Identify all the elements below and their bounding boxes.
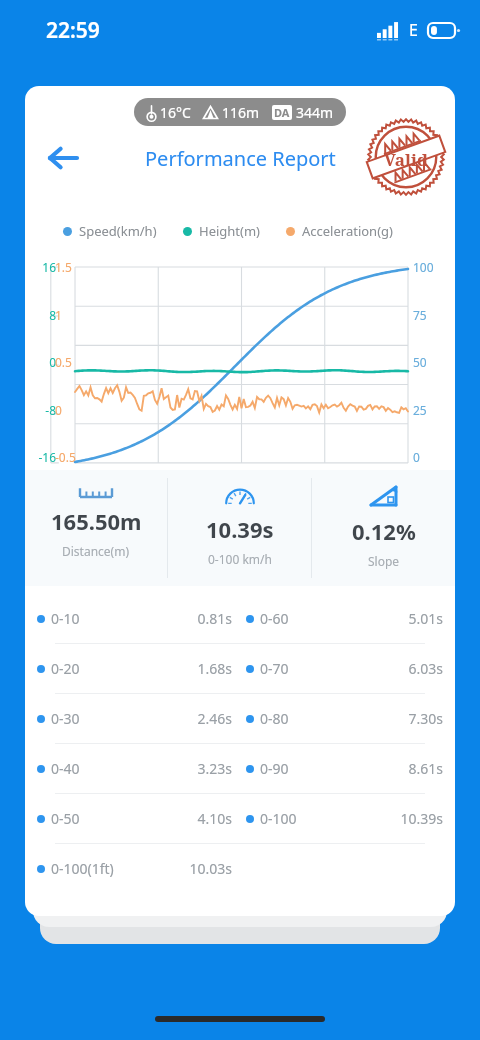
staticText: 16 [30, 259, 56, 275]
staticText: 25 [413, 402, 427, 418]
button[interactable]: 165.50m [25, 470, 167, 586]
button[interactable]: Valid stamp [363, 114, 449, 200]
staticText: 0-40 [51, 759, 80, 778]
button[interactable]: 16°C [134, 98, 346, 126]
staticText: 10.03s [162, 859, 232, 878]
staticText: 1 [55, 307, 83, 323]
staticText: 0 [30, 354, 56, 370]
staticText: E [409, 19, 418, 41]
button[interactable]: 10.39s [168, 470, 311, 586]
staticText: 0-30 [51, 709, 80, 728]
staticText: DA [274, 105, 290, 120]
staticText: Distance(m) [62, 543, 130, 559]
staticText: 0-50 [51, 809, 80, 828]
staticText: 1.5 [55, 259, 83, 275]
staticText: 0-70 [260, 659, 289, 678]
staticText: 10.39s [371, 809, 443, 828]
staticText: Performance Report [145, 145, 336, 172]
staticText: -8 [30, 402, 56, 418]
staticText: Acceleration(g) [302, 222, 393, 240]
staticText: 10.39s [206, 514, 274, 544]
staticText: 100 [413, 259, 434, 275]
staticText: 16°C [160, 103, 191, 122]
staticText: 0-100 [260, 809, 297, 828]
staticText: 0-100(1ft) [51, 859, 114, 878]
staticText: 165.50m [51, 506, 142, 536]
staticText: 75 [413, 307, 427, 323]
staticText: 344m [296, 103, 334, 122]
staticText: 5.01s [371, 609, 443, 628]
staticText: 4.10s [162, 809, 232, 828]
staticText: -16 [30, 449, 56, 465]
staticText: 0-100 km/h [208, 551, 272, 567]
staticText: 22:59 [46, 16, 100, 45]
staticText: 116m [222, 103, 260, 122]
staticText: 3.23s [162, 759, 232, 778]
staticText: 8.61s [371, 759, 443, 778]
staticText: Speed(km/h) [79, 222, 157, 240]
button[interactable]: 0-10 [25, 594, 455, 643]
button[interactable]: 0-100(1ft) [25, 844, 455, 893]
staticText: 0-10 [51, 609, 80, 628]
staticText: 7.30s [371, 709, 443, 728]
staticText: -0.5 [55, 449, 83, 465]
staticText: 0.12% [352, 516, 416, 546]
staticText: Height(m) [199, 222, 260, 240]
staticText: 50 [413, 354, 427, 370]
staticText: 0 [413, 449, 420, 465]
staticText: 0-90 [260, 759, 289, 778]
staticText: 8 [30, 307, 56, 323]
staticText: 2.46s [162, 709, 232, 728]
staticText: 1.68s [162, 659, 232, 678]
staticText: 0.81s [162, 609, 232, 628]
staticText: 0.5 [55, 354, 83, 370]
button[interactable]: 0-20 [25, 644, 455, 693]
button[interactable]: 0.12% [312, 470, 455, 586]
button[interactable]: 0-30 [25, 694, 455, 743]
button[interactable]: 0-50 [25, 794, 455, 843]
button[interactable]: 0-40 [25, 744, 455, 793]
staticText: 0-60 [260, 609, 289, 628]
button[interactable]: Back [37, 132, 89, 184]
staticText: 0 [55, 402, 83, 418]
staticText: 6.03s [371, 659, 443, 678]
staticText: Valid [384, 148, 429, 171]
staticText: 0-80 [260, 709, 289, 728]
staticText: 0-20 [51, 659, 80, 678]
staticText: Slope [368, 553, 400, 569]
